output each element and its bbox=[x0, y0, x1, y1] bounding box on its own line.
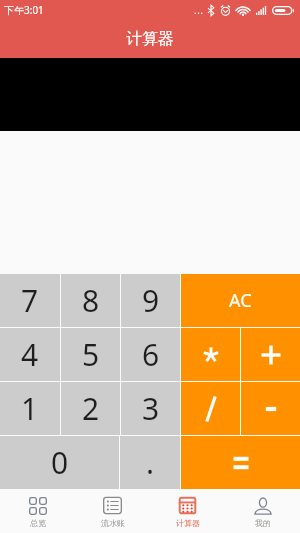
staticText: . bbox=[146, 442, 155, 483]
button[interactable]: 9 bbox=[121, 274, 180, 327]
button[interactable]: Plus bbox=[241, 328, 300, 381]
staticText: 下午3:01 bbox=[4, 3, 44, 17]
staticText: 计算器 bbox=[126, 29, 174, 49]
staticText: 0 bbox=[51, 442, 69, 483]
button[interactable]: 6 bbox=[121, 328, 180, 381]
button[interactable]: Minus bbox=[241, 382, 300, 435]
button[interactable]: . bbox=[120, 436, 180, 489]
button[interactable]: AC bbox=[181, 274, 300, 327]
staticText: 我的 bbox=[255, 518, 271, 528]
staticText: 5 bbox=[82, 334, 100, 375]
button[interactable]: 3 bbox=[121, 382, 180, 435]
button[interactable]: 5 bbox=[61, 328, 120, 381]
staticText: 6 bbox=[142, 334, 160, 375]
button[interactable]: 总览 bbox=[0, 489, 75, 533]
button[interactable]: 计算器 bbox=[150, 489, 225, 533]
button[interactable]: 流水账 bbox=[75, 489, 150, 533]
staticText: 7 bbox=[21, 280, 39, 321]
button[interactable]: 8 bbox=[61, 274, 120, 327]
button[interactable]: 2 bbox=[61, 382, 120, 435]
button[interactable]: 0 bbox=[0, 436, 119, 489]
staticText: 3 bbox=[142, 388, 160, 429]
button[interactable]: 我的 bbox=[225, 489, 300, 533]
button[interactable]: 7 bbox=[0, 274, 60, 327]
staticText: 总览 bbox=[30, 518, 46, 528]
button[interactable]: 4 bbox=[0, 328, 60, 381]
staticText: 流水账 bbox=[101, 518, 125, 528]
button[interactable]: 1 bbox=[0, 382, 60, 435]
staticText: 9 bbox=[142, 280, 160, 321]
staticText: 8 bbox=[82, 280, 100, 321]
staticText: 1 bbox=[21, 388, 39, 429]
staticText: AC bbox=[229, 288, 252, 313]
staticText: 计算器 bbox=[176, 518, 200, 528]
button[interactable]: Divide bbox=[181, 382, 240, 435]
button[interactable]: Equals bbox=[181, 436, 300, 489]
staticText: 4 bbox=[21, 334, 39, 375]
staticText: 2 bbox=[82, 388, 100, 429]
button[interactable]: Multiply bbox=[181, 328, 240, 381]
